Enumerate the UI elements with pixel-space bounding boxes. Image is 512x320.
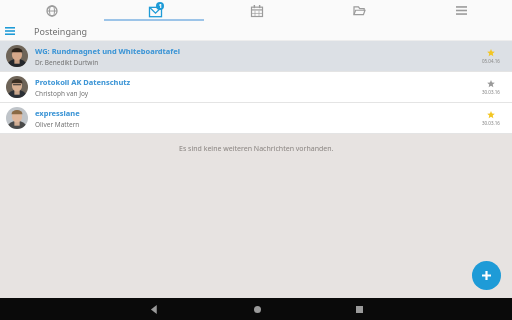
staticText: expresslane: [35, 108, 80, 118]
button[interactable]: Web: [0, 0, 103, 21]
staticText: 05.04.16: [482, 58, 500, 64]
button[interactable]: Markiert: [476, 49, 506, 64]
staticText: Oliver Mattern: [35, 120, 80, 129]
button[interactable]: expresslane: [0, 103, 512, 133]
button[interactable]: Markieren: [476, 80, 506, 95]
button[interactable]: Navigationsmenü: [0, 21, 20, 41]
staticText: WG: Rundmagnet und Whiteboardtafel: [35, 46, 180, 56]
staticText: Es sind keine weiteren Nachrichten vorha…: [179, 144, 334, 154]
button[interactable]: Startbildschirm: [206, 298, 308, 320]
staticText: 30.03.16: [482, 120, 500, 126]
staticText: Christoph van Joy: [35, 89, 89, 98]
button[interactable]: Ordner: [308, 0, 410, 21]
button[interactable]: Protokoll AK Datenschutz: [0, 72, 512, 102]
button[interactable]: Kalender: [206, 0, 308, 21]
button[interactable]: Posteingang: [103, 0, 206, 21]
staticText: Protokoll AK Datenschutz: [35, 77, 131, 87]
button[interactable]: Menü: [410, 0, 512, 21]
button[interactable]: Markiert: [476, 111, 506, 126]
button[interactable]: Übersicht: [308, 298, 410, 320]
staticText: 30.03.16: [482, 89, 500, 95]
button[interactable]: WG: Rundmagnet und Whiteboardtafel: [0, 41, 512, 71]
button[interactable]: Neue Nachricht verfassen: [472, 261, 501, 290]
staticText: 1: [159, 3, 162, 10]
staticText: Dr. Benedikt Durtwin: [35, 58, 99, 67]
button[interactable]: Zurück: [103, 298, 206, 320]
staticText: Posteingang: [34, 25, 88, 37]
